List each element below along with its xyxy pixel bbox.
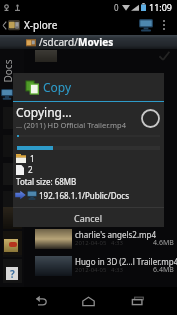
staticText: Hugo in 3D (2...l Trailer.mp4 (75, 256, 177, 267)
staticText: ... (2011) HD Official Trailer.mp4 (16, 120, 127, 130)
button[interactable]: Network servers (136, 14, 156, 35)
button[interactable]: Hugo in 3D (2...l Trailer.mp4 (0, 256, 177, 276)
button[interactable]: Cancel (13, 208, 164, 227)
button[interactable]: Docs (0, 49, 24, 287)
staticText: 2012-04-05 4:33 (75, 266, 123, 274)
staticText: X-plore (24, 18, 58, 32)
staticText: Copying... (16, 104, 72, 120)
staticText: charlie's angels2.mp4 (75, 229, 157, 240)
staticText: 11:09 (149, 1, 173, 13)
staticText: ? (10, 267, 15, 280)
button[interactable]: charlie's angels2.mp4 (0, 229, 177, 249)
button[interactable]: Home (75, 288, 101, 314)
staticText: Copy (43, 79, 72, 95)
button[interactable] (0, 49, 177, 63)
staticText: Total size: 68MB (16, 176, 77, 187)
staticText: /sdcard/ (39, 35, 78, 49)
button[interactable]: Navigate up (1, 16, 7, 34)
staticText: 2 (28, 164, 33, 175)
staticText: 4.6MB (153, 238, 174, 248)
staticText: 2012-04-05 4:33 (75, 239, 123, 247)
staticText: Movies (78, 35, 114, 49)
staticText: 1 (30, 153, 35, 164)
staticText: Docs (0, 59, 14, 82)
staticText: 192.168.1.1/Public/Docs (39, 190, 130, 201)
button[interactable]: More options (157, 14, 170, 35)
button[interactable]: Recent apps (125, 288, 151, 314)
staticText: 6.4MB (153, 265, 174, 275)
staticText: Cancel (74, 212, 103, 224)
staticText: 0 (114, 2, 119, 13)
button[interactable]: Back (26, 288, 52, 314)
